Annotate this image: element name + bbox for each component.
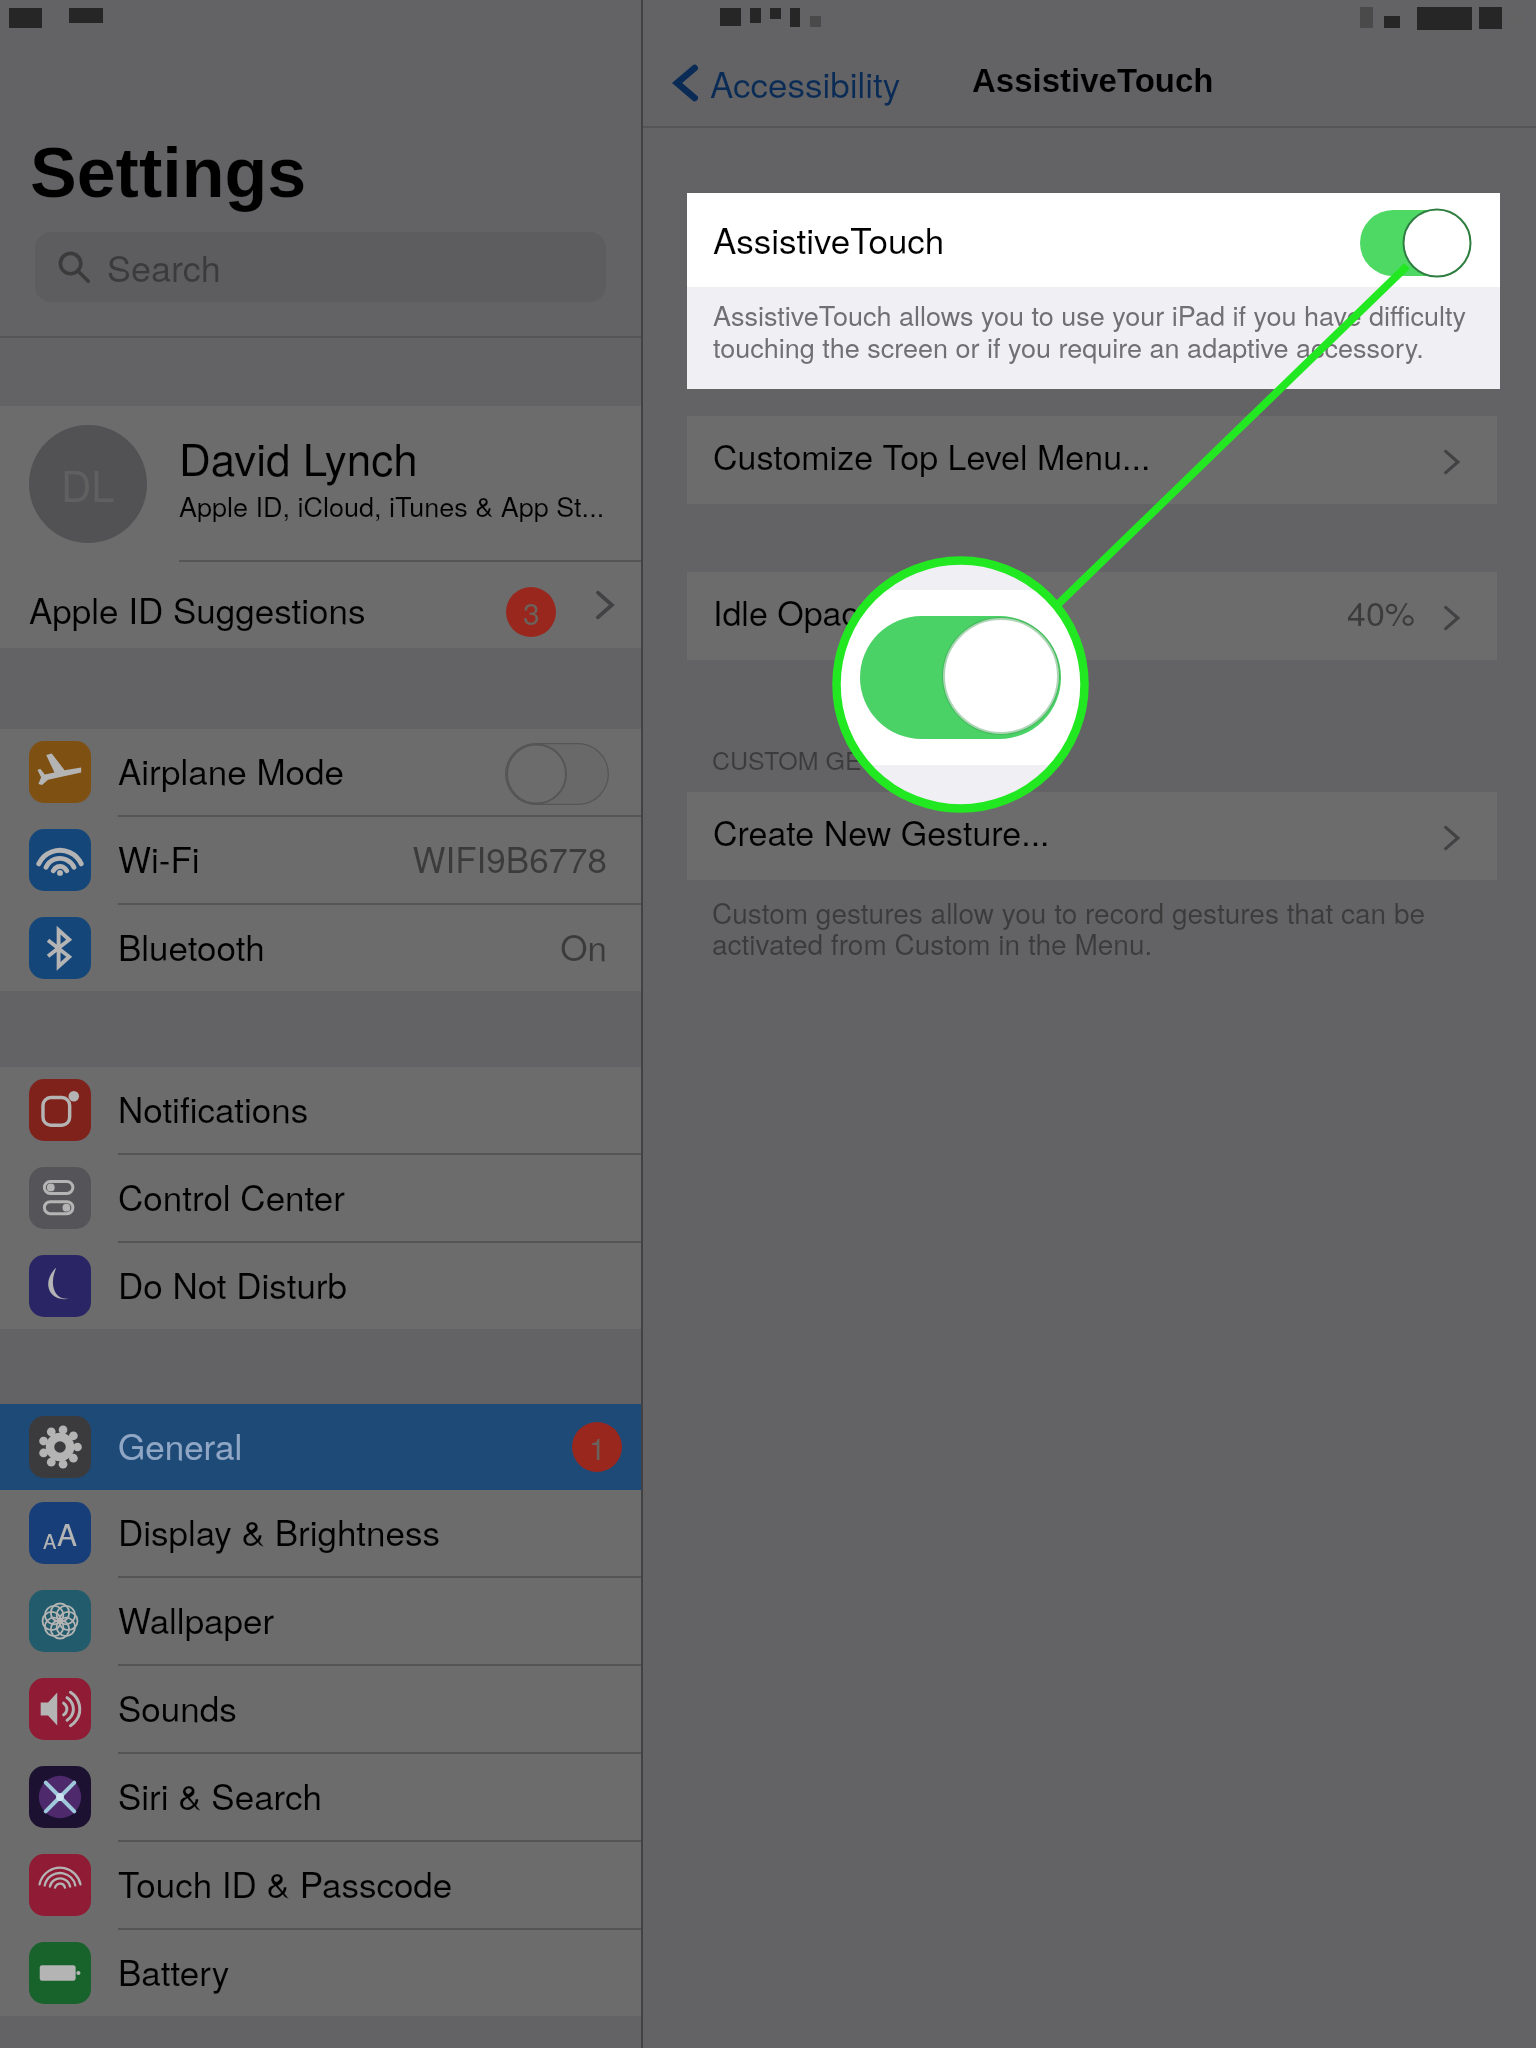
staticText: 1 xyxy=(589,1426,606,1469)
staticText: Control Center xyxy=(118,1171,345,1221)
staticText: Siri & Search xyxy=(118,1770,323,1820)
staticText: Wi-Fi xyxy=(118,833,200,883)
staticText: Apple ID Suggestions xyxy=(29,584,366,634)
staticText: CUSTOM GESTURES xyxy=(712,741,963,777)
button[interactable]: Do Not Disturb xyxy=(0,1243,641,1329)
staticText: Wallpaper xyxy=(118,1594,275,1644)
staticText: 40% xyxy=(1347,587,1416,636)
staticText: Custom gestures allow you to record gest… xyxy=(712,892,1426,963)
staticText: Do Not Disturb xyxy=(118,1259,347,1309)
button[interactable]: Siri & Search xyxy=(0,1754,641,1840)
button[interactable]: Airplane Mode xyxy=(0,729,641,815)
staticText: DL xyxy=(61,454,115,514)
staticText: Bluetooth xyxy=(118,921,265,971)
staticText: AssistiveTouch allows you to use your iP… xyxy=(713,295,1466,365)
staticText: Accessibility xyxy=(710,58,901,108)
staticText: A xyxy=(43,1526,57,1555)
button[interactable]: AssistiveTouch xyxy=(687,193,1500,287)
button[interactable]: DL xyxy=(0,406,641,562)
staticText: Sounds xyxy=(118,1682,237,1732)
button[interactable]: Wallpaper xyxy=(0,1578,641,1664)
staticText: Customize Top Level Menu... xyxy=(713,431,1151,480)
button[interactable]: A xyxy=(0,1490,641,1576)
button[interactable]: Airplane Mode xyxy=(505,743,609,805)
button[interactable]: General xyxy=(0,1404,641,1490)
staticText: Idle Opacity xyxy=(713,587,893,636)
button[interactable]: Notifications xyxy=(0,1067,641,1153)
button[interactable]: Sounds xyxy=(0,1666,641,1752)
button[interactable]: Apple ID Suggestions xyxy=(0,562,641,648)
staticText: AssistiveTouch xyxy=(972,62,1214,99)
staticText: Create New Gesture... xyxy=(713,807,1050,856)
button[interactable]: Customize Top Level Menu... xyxy=(687,416,1497,504)
staticText: 3 xyxy=(523,591,540,634)
staticText: David Lynch xyxy=(179,425,418,488)
staticText: WIFI9B6778 xyxy=(0,833,607,883)
button[interactable]: Create New Gesture... xyxy=(687,792,1497,880)
staticText: Battery xyxy=(118,1946,230,1996)
staticText: Apple ID, iCloud, iTunes & App St... xyxy=(179,486,605,525)
staticText: Notifications xyxy=(118,1083,309,1133)
button[interactable]: Idle Opacity xyxy=(687,572,1497,660)
staticText: Airplane Mode xyxy=(118,745,344,795)
staticText: On xyxy=(0,921,607,971)
staticText: Display & Brightness xyxy=(118,1506,441,1556)
button[interactable]: Touch ID & Passcode xyxy=(0,1842,641,1928)
button[interactable]: Accessibility xyxy=(663,58,901,108)
staticText: Search xyxy=(107,241,221,293)
button[interactable]: Bluetooth xyxy=(0,905,641,991)
staticText: Settings xyxy=(30,134,307,212)
button[interactable]: Wi-Fi xyxy=(0,817,641,903)
staticText: A xyxy=(57,1512,78,1555)
staticText: General xyxy=(118,1420,243,1470)
button[interactable]: Control Center xyxy=(0,1155,641,1241)
button[interactable]: Search xyxy=(35,232,606,302)
button[interactable]: AssistiveTouch toggle xyxy=(1360,208,1472,278)
staticText: AssistiveTouch xyxy=(713,214,945,264)
button[interactable]: Battery xyxy=(0,1930,641,2016)
staticText: Touch ID & Passcode xyxy=(118,1858,453,1908)
